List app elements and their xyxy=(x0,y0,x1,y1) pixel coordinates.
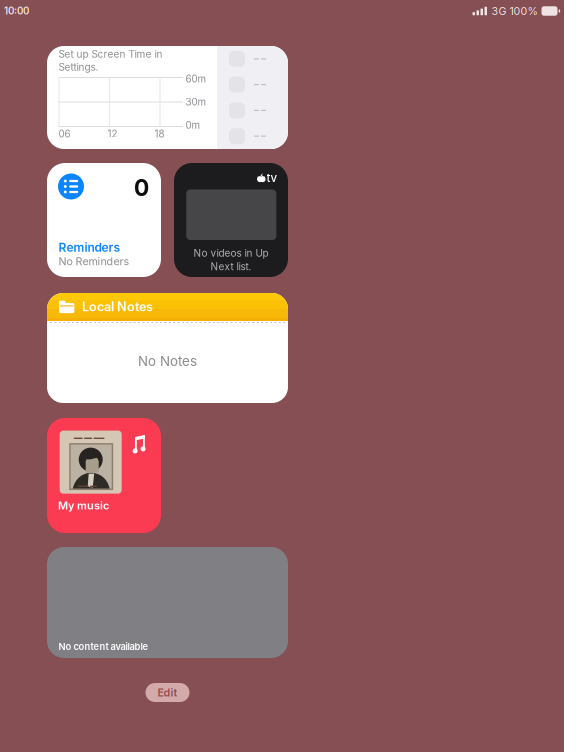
staticText: 12 xyxy=(107,128,117,140)
staticText: Set up Screen Time in xyxy=(58,48,162,60)
button[interactable]: tv xyxy=(174,163,288,277)
staticText: tv xyxy=(266,171,277,185)
staticText: 30m xyxy=(185,96,206,108)
staticText: Local Notes xyxy=(82,299,153,314)
button[interactable]: Edit xyxy=(145,683,189,702)
staticText: 0 xyxy=(134,174,149,201)
staticText: 18 xyxy=(154,128,164,140)
staticText: 60m xyxy=(185,73,206,85)
staticText: 10:00 xyxy=(4,5,29,17)
staticText: 06 xyxy=(58,128,70,140)
button[interactable]: 0 xyxy=(47,163,161,277)
staticText: My music xyxy=(58,499,109,512)
staticText: Next list. xyxy=(210,261,251,273)
staticText: 3G 100% xyxy=(491,4,537,17)
staticText: No content available xyxy=(58,641,148,652)
button[interactable]: My music xyxy=(47,418,161,533)
staticText: No Reminders xyxy=(58,255,129,268)
button[interactable]: Set up Screen Time in xyxy=(47,46,288,149)
staticText: Settings. xyxy=(58,61,98,73)
button[interactable]: No content available xyxy=(47,547,288,658)
staticText: 0m xyxy=(185,119,200,131)
button[interactable]: Local Notes xyxy=(47,293,288,403)
staticText: No videos in Up xyxy=(193,247,268,259)
staticText: Edit xyxy=(157,686,177,699)
staticText: Reminders xyxy=(58,240,120,254)
staticText: No Notes xyxy=(138,353,197,369)
